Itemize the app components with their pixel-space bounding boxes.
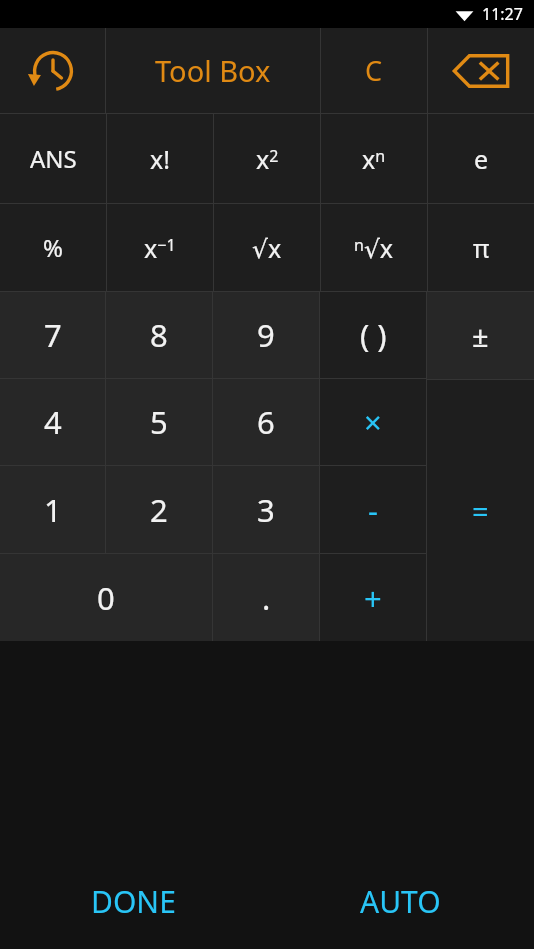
button[interactable]: x−1 <box>107 204 213 291</box>
staticText: ± <box>472 316 489 355</box>
staticText: Tool Box <box>155 51 271 90</box>
button[interactable]: e <box>428 114 534 203</box>
button[interactable]: 2 <box>106 466 212 553</box>
staticText: C <box>365 52 383 89</box>
button[interactable]: π <box>428 204 534 291</box>
staticText: √x <box>252 231 282 265</box>
button[interactable]: 0 <box>0 554 212 641</box>
staticText: xn <box>362 142 386 176</box>
button[interactable]: Tool Box <box>106 28 320 113</box>
staticText: 9 <box>257 314 275 356</box>
button[interactable]: = <box>427 380 534 641</box>
button[interactable]: - <box>320 466 426 553</box>
staticText: ( ) <box>360 314 387 356</box>
staticText: . <box>262 577 271 619</box>
staticText: 11:27 <box>482 3 523 25</box>
button[interactable]: 6 <box>213 379 319 465</box>
button[interactable]: 3 <box>213 466 319 553</box>
button[interactable]: 8 <box>106 292 212 378</box>
staticText: 4 <box>44 401 62 443</box>
button[interactable]: 1 <box>0 466 105 553</box>
staticText: 6 <box>257 401 275 443</box>
staticText: 8 <box>150 314 168 356</box>
button[interactable]: x2 <box>214 114 320 203</box>
button[interactable]: AUTO <box>267 853 534 949</box>
button[interactable]: . <box>213 554 319 641</box>
button[interactable]: + <box>320 554 426 641</box>
button[interactable]: % <box>0 204 106 291</box>
button[interactable]: x! <box>107 114 213 203</box>
staticText: = <box>472 491 489 530</box>
staticText: 2 <box>150 489 168 531</box>
button[interactable]: DONE <box>0 853 267 949</box>
staticText: 5 <box>150 401 168 443</box>
button[interactable]: × <box>320 379 426 465</box>
staticText: - <box>368 489 378 531</box>
button[interactable]: ( ) <box>320 292 426 378</box>
staticText: 1 <box>44 489 62 531</box>
staticText: x! <box>150 142 170 176</box>
staticText: DONE <box>91 881 176 922</box>
staticText: 0 <box>97 577 115 619</box>
staticText: ANS <box>30 142 77 175</box>
button[interactable]: ± <box>427 292 534 379</box>
button[interactable]: xn <box>321 114 427 203</box>
button[interactable]: Backspace <box>428 28 534 113</box>
staticText: e <box>474 142 489 176</box>
button[interactable]: History <box>0 28 105 113</box>
staticText: × <box>364 401 382 443</box>
staticText: n√x <box>354 231 394 265</box>
button[interactable]: n√x <box>321 204 427 291</box>
staticText: 7 <box>44 314 62 356</box>
button[interactable]: 4 <box>0 379 105 465</box>
staticText: + <box>364 577 382 619</box>
button[interactable]: C <box>321 28 427 113</box>
staticText: 3 <box>257 489 275 531</box>
staticText: x2 <box>256 142 279 176</box>
staticText: % <box>43 231 63 264</box>
button[interactable]: ANS <box>0 114 106 203</box>
button[interactable]: 9 <box>213 292 319 378</box>
button[interactable]: √x <box>214 204 320 291</box>
staticText: x−1 <box>144 231 176 265</box>
staticText: AUTO <box>360 881 441 922</box>
button[interactable]: 7 <box>0 292 105 378</box>
button[interactable]: 5 <box>106 379 212 465</box>
staticText: π <box>473 231 490 265</box>
